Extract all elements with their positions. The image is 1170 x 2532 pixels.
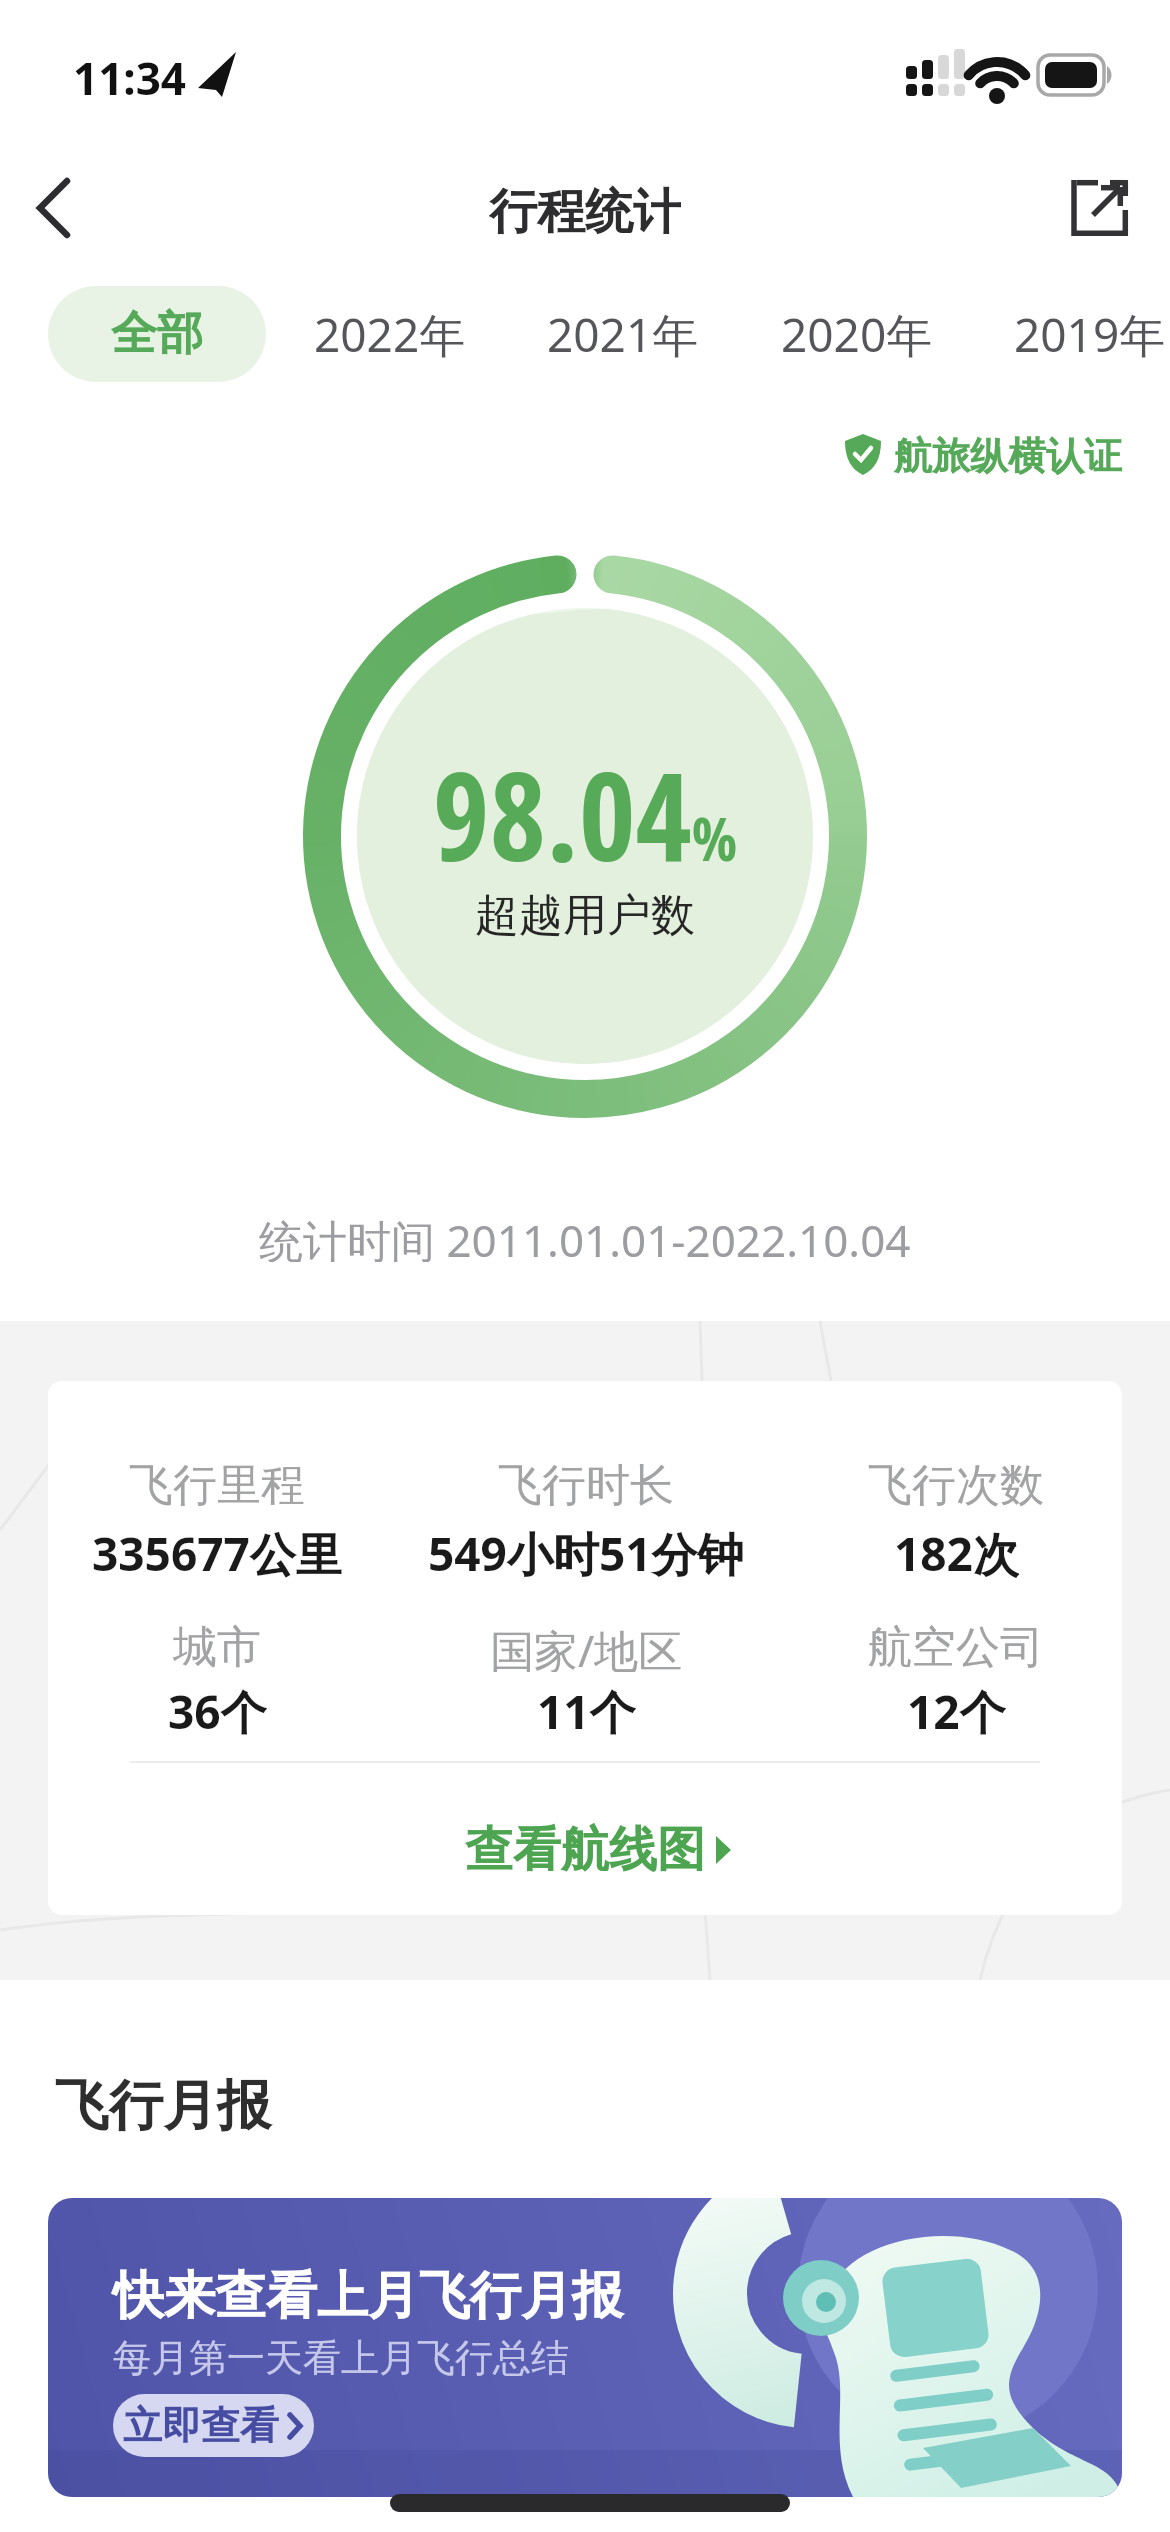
staticText: 549小时51分钟 xyxy=(428,1522,744,1580)
staticText: 182次 xyxy=(894,1522,1019,1580)
staticText: 2022年 xyxy=(314,303,466,366)
staticText: 统计时间 2011.01.01-2022.10.04 xyxy=(259,1210,911,1262)
staticText: 11个 xyxy=(537,1680,636,1738)
staticText: 2020年 xyxy=(781,303,933,366)
staticText: 飞行里程 xyxy=(129,1458,305,1510)
staticText: 快来查看上月飞行月报 xyxy=(113,2264,623,2328)
button[interactable]: 2019年 xyxy=(990,286,1170,382)
staticText: 城市 xyxy=(173,1620,261,1672)
staticText: 全部 xyxy=(111,305,203,363)
button[interactable] xyxy=(1060,166,1144,250)
staticText: 查看航线图 xyxy=(465,1820,705,1880)
button[interactable]: 查看航线图 xyxy=(385,1820,785,1880)
staticText: 航空公司 xyxy=(868,1620,1044,1672)
button[interactable]: 全部 xyxy=(48,286,266,382)
staticText: 11:34 xyxy=(73,48,187,100)
staticText: 335677公里 xyxy=(92,1522,342,1580)
staticText: 2021年 xyxy=(547,303,699,366)
staticText: 98.04% xyxy=(433,731,738,897)
staticText: 2019年 xyxy=(1014,303,1166,366)
staticText: 飞行月报 xyxy=(55,2072,271,2140)
staticText: 飞行次数 xyxy=(868,1458,1044,1510)
staticText: 行程统计 xyxy=(489,182,681,238)
staticText: 国家/地区 xyxy=(490,1620,683,1672)
staticText: 超越用户数 xyxy=(475,888,695,938)
button[interactable]: 立即查看 xyxy=(113,2394,314,2457)
button[interactable] xyxy=(24,176,84,240)
staticText: 立即查看 xyxy=(123,2401,279,2450)
staticText: 飞行时长 xyxy=(498,1458,674,1510)
button[interactable]: 快来查看上月飞行月报 xyxy=(48,2198,1122,2497)
button[interactable]: 航旅纵横认证 xyxy=(845,430,1122,482)
staticText: 36个 xyxy=(168,1680,267,1738)
button[interactable]: 2021年 xyxy=(523,286,723,382)
staticText: 12个 xyxy=(907,1680,1006,1738)
staticText: 航旅纵横认证 xyxy=(894,432,1122,480)
staticText: 每月第一天看上月飞行总结 xyxy=(113,2334,569,2382)
button[interactable]: 2020年 xyxy=(757,286,957,382)
button[interactable]: 2022年 xyxy=(290,286,490,382)
